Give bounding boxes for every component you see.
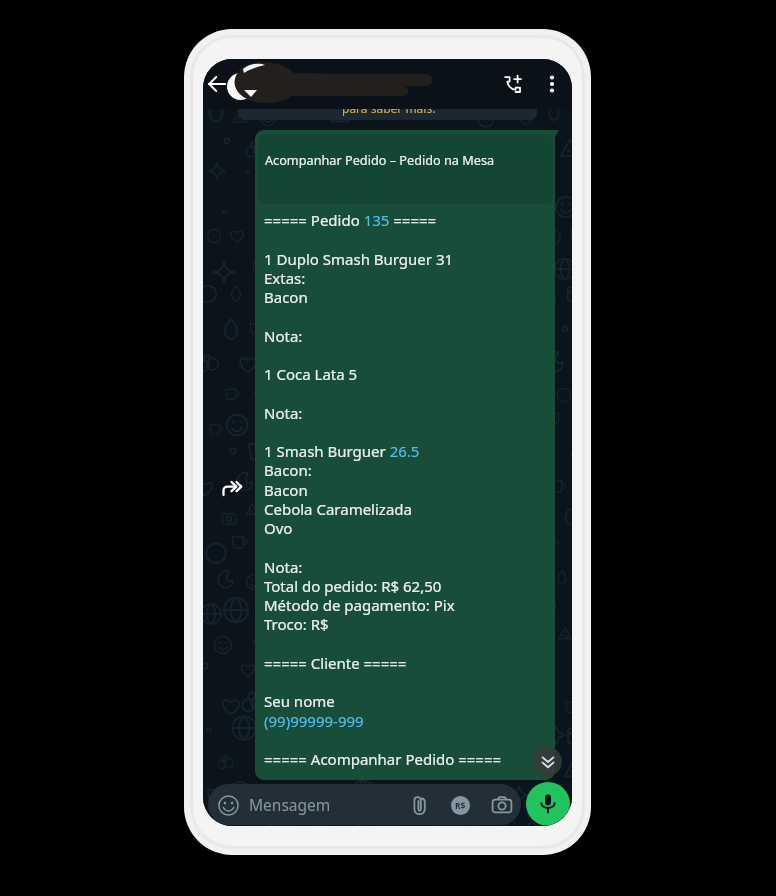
button[interactable]: Payments bbox=[446, 791, 474, 819]
staticText: Bacon bbox=[264, 480, 308, 500]
button[interactable]: Back bbox=[203, 66, 235, 102]
staticText: Seu nome bbox=[264, 691, 335, 711]
staticText: Ovo bbox=[264, 518, 293, 538]
staticText: Nota: bbox=[264, 557, 303, 577]
button[interactable]: Acompanhar Pedido – Pedido na Mesa bbox=[255, 130, 555, 780]
staticText: 1 Smash Burguer 26.5 bbox=[264, 441, 420, 461]
button[interactable]: Emoji bbox=[216, 793, 240, 817]
staticText: Bacon bbox=[264, 287, 308, 307]
button[interactable]: Attach bbox=[404, 791, 432, 819]
staticText: ===== Cliente ===== bbox=[264, 653, 407, 673]
staticText: Extas: bbox=[264, 268, 306, 288]
button[interactable]: Emoji bbox=[208, 784, 521, 825]
button[interactable]: Scroll to bottom bbox=[533, 747, 562, 776]
staticText: R$ bbox=[455, 800, 466, 812]
staticText: (99)99999-999 bbox=[264, 711, 364, 731]
staticText: Total do pedido: R$ 62,50 bbox=[264, 576, 442, 596]
button[interactable]: Voice message bbox=[526, 782, 570, 826]
button[interactable]: Profile photo bbox=[227, 73, 254, 100]
staticText: 1 Duplo Smash Burguer 31 bbox=[264, 249, 454, 269]
staticText: Bacon: bbox=[264, 460, 312, 480]
button[interactable]: More options bbox=[536, 68, 568, 100]
staticText: Troco: R$ bbox=[264, 614, 329, 634]
staticText: Nota: bbox=[264, 326, 303, 346]
button[interactable]: Camera bbox=[488, 791, 516, 819]
staticText: 1 Coca Lata 5 bbox=[264, 364, 358, 384]
button[interactable]: Forwarded bbox=[221, 477, 243, 499]
button[interactable]: Acompanhar Pedido – Pedido na Mesa bbox=[258, 134, 553, 204]
staticText: Método de pagamento: Pix bbox=[264, 595, 455, 615]
staticText: Nota: bbox=[264, 403, 303, 423]
staticText: Mensagem bbox=[249, 794, 331, 815]
button[interactable]: Add call bbox=[494, 65, 532, 103]
staticText: Acompanhar Pedido – Pedido na Mesa bbox=[265, 151, 495, 168]
staticText: ===== Pedido 135 ===== bbox=[264, 210, 437, 230]
staticText: para saber mais. bbox=[342, 100, 436, 116]
staticText: Cebola Caramelizada bbox=[264, 499, 412, 519]
staticText: ===== Acompanhar Pedido ===== bbox=[264, 749, 502, 769]
